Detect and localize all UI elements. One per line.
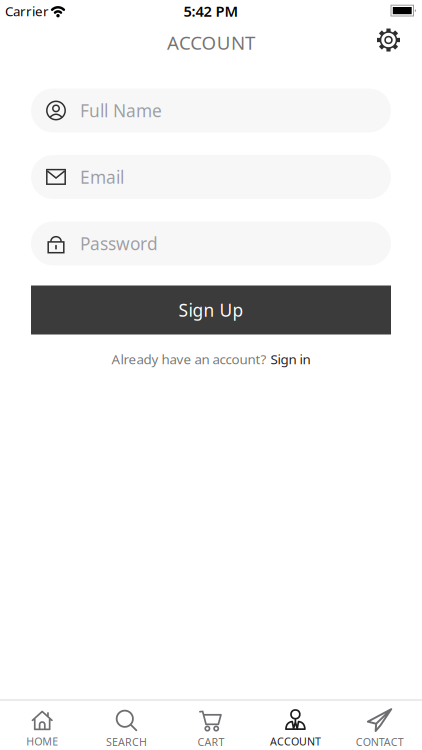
button[interactable]: Password [31,221,391,265]
staticText: CONTACT [356,735,404,749]
button[interactable]: SEARCH [85,706,169,750]
staticText: Sign in [270,350,310,368]
staticText: 5:42 PM [183,1,238,21]
staticText: CART [197,735,224,749]
button[interactable]: Full Name [31,88,391,132]
staticText: Already have an account? [111,350,266,368]
button[interactable]: Email [31,155,391,199]
button[interactable]: Sign Up [31,285,391,334]
staticText: SEARCH [106,735,147,749]
staticText: ACCOUNT [270,734,321,748]
button[interactable]: CONTACT [338,706,422,750]
button[interactable]: CART [169,706,253,750]
staticText: Sign Up [178,298,243,321]
staticText: Full Name [80,99,162,122]
staticText: Carrier [5,2,49,20]
staticText: ACCOUNT [167,30,255,55]
staticText: Password [80,232,158,255]
staticText: Email [80,165,124,188]
button[interactable]: ACCOUNT [253,706,337,750]
button[interactable]: Sign in [270,350,310,368]
staticText: HOME [26,734,58,748]
button[interactable]: HOME [0,706,84,750]
button[interactable]: Settings [368,20,408,60]
